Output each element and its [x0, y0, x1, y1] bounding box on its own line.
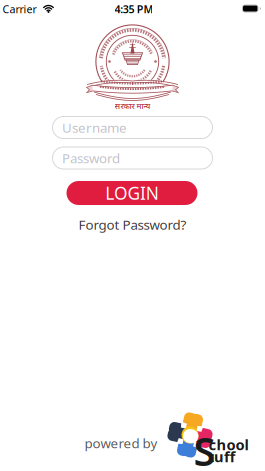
staticText: S	[193, 424, 215, 471]
button[interactable]: Password	[52, 146, 213, 169]
staticText: powered by	[84, 434, 157, 452]
staticText: tuff	[208, 447, 235, 466]
staticText: Username	[62, 119, 127, 136]
staticText: Carrier	[2, 2, 36, 16]
staticText: chool	[208, 435, 248, 454]
button[interactable]: Username	[52, 116, 213, 139]
staticText: सरकार मान्य	[114, 101, 150, 111]
staticText: Forgot Password?	[78, 216, 186, 233]
staticText: LOGIN	[105, 181, 159, 204]
staticText: Password	[62, 149, 120, 167]
staticText: 4:35 PM	[114, 2, 153, 16]
button[interactable]: LOGIN	[66, 181, 197, 205]
button[interactable]: Forgot Password?	[78, 216, 186, 233]
